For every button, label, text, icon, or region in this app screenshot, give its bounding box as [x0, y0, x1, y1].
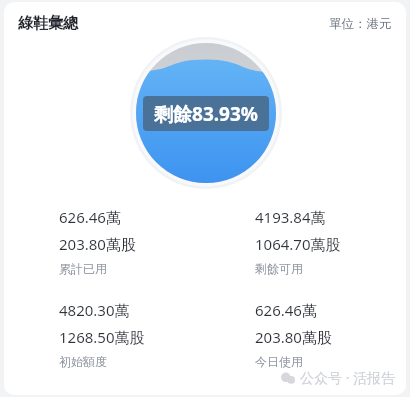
staticText: 203.80萬股 — [59, 234, 136, 254]
staticText: 累計已用 — [59, 261, 107, 276]
staticText: 今日使用 — [255, 354, 303, 369]
staticText: 綠鞋彙總 — [18, 14, 78, 33]
staticText: 剩餘83.93% — [154, 101, 258, 127]
staticText: 4820.30萬 — [59, 300, 130, 320]
staticText: 公众号 · 活报告 — [300, 368, 396, 387]
staticText: 初始額度 — [59, 354, 107, 369]
staticText: 626.46萬 — [59, 207, 121, 227]
button[interactable]: 626.46萬 — [59, 207, 205, 276]
staticText: 1064.70萬股 — [255, 234, 341, 254]
staticText: 4193.84萬 — [255, 207, 326, 227]
staticText: 單位：港元 — [329, 16, 392, 32]
button[interactable]: 4820.30萬 — [59, 300, 205, 369]
button[interactable]: 626.46萬 — [255, 300, 406, 369]
staticText: 203.80萬股 — [255, 327, 332, 347]
button[interactable]: 4193.84萬 — [255, 207, 406, 276]
staticText: 剩餘可用 — [255, 261, 303, 276]
staticText: 626.46萬 — [255, 300, 317, 320]
button[interactable]: 剩餘 83.93% — [130, 37, 282, 189]
staticText: 1268.50萬股 — [59, 327, 145, 347]
